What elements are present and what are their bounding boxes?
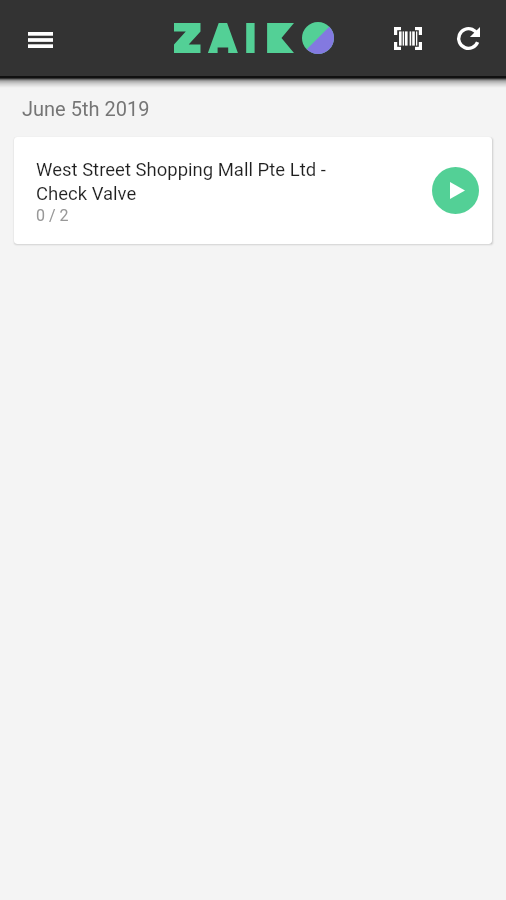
button[interactable]: Scan barcode — [384, 14, 432, 62]
button[interactable]: West Street Shopping Mall Pte Ltd - Chec… — [14, 137, 492, 244]
button[interactable]: Start job — [432, 167, 479, 214]
staticText: 0 / 2 — [36, 206, 69, 225]
staticText: June 5th 2019 — [22, 97, 150, 120]
staticText: West Street Shopping Mall Pte Ltd - Chec… — [36, 159, 336, 205]
button[interactable]: Refresh — [444, 14, 492, 62]
button[interactable]: Open navigation menu — [16, 16, 64, 64]
